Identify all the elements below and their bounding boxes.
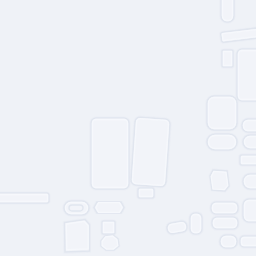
button[interactable]: Icon [222, 50, 233, 67]
button[interactable]: Avatar [101, 235, 119, 250]
button[interactable]: Row two [212, 217, 238, 229]
button[interactable]: Slider handle [190, 213, 202, 234]
button[interactable]: Tile [207, 96, 237, 130]
button[interactable]: Status chip [221, 0, 234, 22]
button[interactable]: Chip three [243, 174, 256, 189]
button[interactable]: Primary card [91, 118, 129, 189]
button[interactable]: Footer bar [240, 236, 256, 247]
button[interactable]: Row one [211, 202, 238, 214]
button[interactable]: Title bar [221, 30, 256, 40]
button[interactable]: Pill [167, 222, 187, 233]
button[interactable]: Note [65, 220, 90, 253]
button[interactable]: Secondary card [133, 118, 168, 186]
button[interactable]: Badge [210, 170, 229, 191]
button[interactable]: Checkbox [102, 221, 115, 234]
button[interactable]: Toggle [64, 201, 89, 215]
button[interactable]: Progress bar [0, 193, 49, 203]
button[interactable]: Chip [242, 119, 256, 132]
button[interactable]: Dot [220, 235, 237, 248]
button[interactable]: Caption chip [138, 188, 154, 198]
button[interactable]: Chip two [243, 135, 256, 149]
button[interactable]: Button [207, 134, 237, 150]
button[interactable]: Panel [237, 49, 256, 101]
button[interactable]: Tag [94, 202, 124, 213]
button[interactable]: Divider [240, 155, 256, 165]
button[interactable]: Side panel [243, 199, 256, 222]
